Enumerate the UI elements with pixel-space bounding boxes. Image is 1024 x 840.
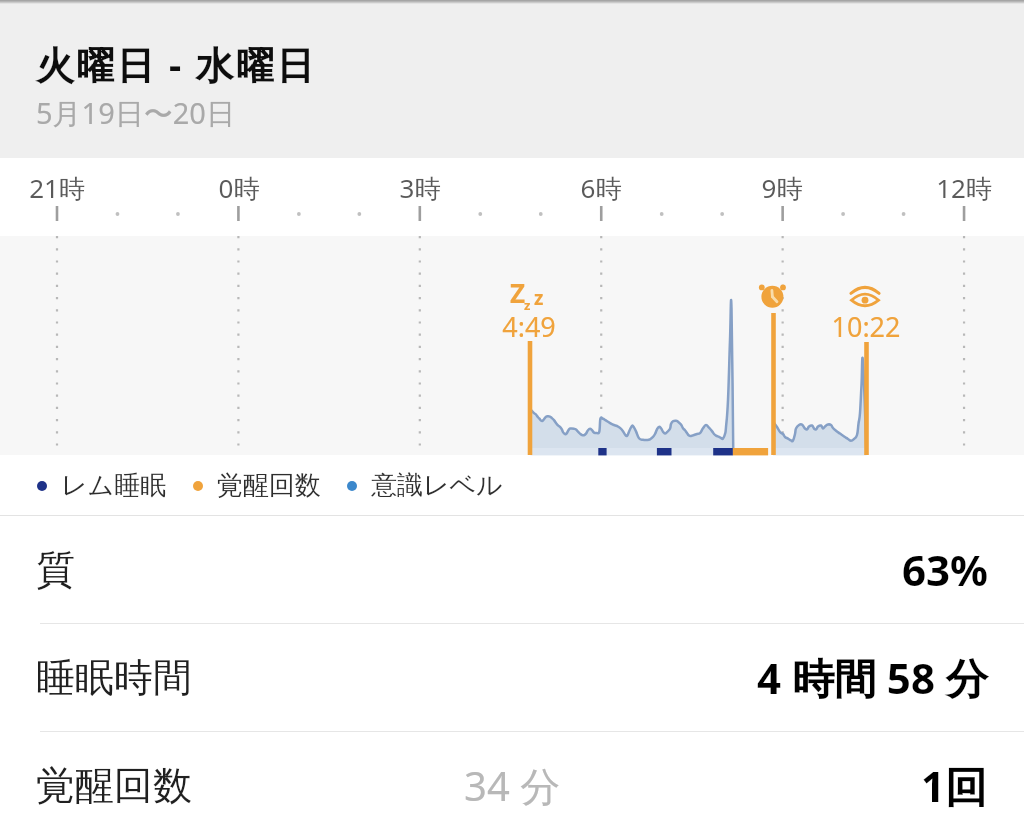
staticText: 火曜日 - 水曜日 bbox=[36, 38, 317, 90]
staticText: z bbox=[534, 285, 544, 311]
staticText: 10:22 bbox=[806, 308, 926, 345]
staticText: Z bbox=[510, 275, 526, 305]
other: Alarm bbox=[757, 283, 789, 311]
staticText: 1回 bbox=[921, 757, 988, 814]
staticText: 4 時間 58 分 bbox=[757, 649, 988, 706]
staticText: 9時 bbox=[732, 170, 832, 206]
button[interactable]: 質 bbox=[0, 516, 1024, 624]
staticText: 3時 bbox=[370, 170, 470, 206]
staticText: 12時 bbox=[914, 170, 1014, 206]
staticText: 質 bbox=[36, 545, 75, 594]
staticText: 63% bbox=[902, 541, 988, 598]
button[interactable]: レム睡眠 bbox=[37, 469, 167, 502]
button[interactable]: 火曜日 - 水曜日 bbox=[0, 0, 1024, 158]
staticText: 覚醒回数 bbox=[36, 761, 192, 810]
staticText: レム睡眠 bbox=[61, 469, 167, 502]
staticText: z bbox=[524, 296, 531, 314]
staticText: 睡眠時間 bbox=[36, 653, 192, 702]
staticText: 6時 bbox=[551, 170, 651, 206]
staticText: 4:49 bbox=[469, 308, 589, 345]
staticText: 意識レベル bbox=[371, 469, 503, 502]
staticText: 21時 bbox=[7, 170, 107, 206]
other: Sleep start bbox=[510, 283, 550, 313]
staticText: 0時 bbox=[189, 170, 289, 206]
button[interactable]: 覚醒回数 bbox=[0, 732, 1024, 839]
other: Wake up bbox=[850, 284, 882, 310]
staticText: 5月19日〜20日 bbox=[36, 93, 235, 133]
staticText: 34 分 bbox=[464, 758, 561, 813]
button[interactable]: 覚醒回数 bbox=[193, 469, 321, 502]
button[interactable]: 睡眠時間 bbox=[0, 624, 1024, 732]
button[interactable]: 意識レベル bbox=[347, 469, 503, 502]
staticText: 覚醒回数 bbox=[217, 469, 321, 502]
